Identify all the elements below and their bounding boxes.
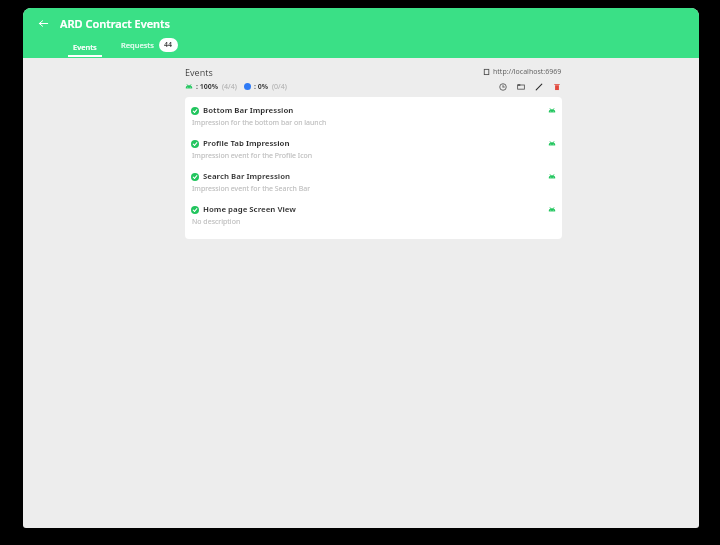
staticText: Home page Screen View: [203, 204, 296, 215]
staticText: Events: [185, 66, 213, 78]
staticText: Bottom Bar Impression: [203, 105, 294, 116]
staticText: (0/4): [272, 82, 287, 92]
button[interactable]: Search Bar Impression: [185, 168, 562, 201]
staticText: No description: [192, 217, 241, 227]
button[interactable]: Events: [67, 39, 103, 57]
button[interactable]: History: [497, 81, 508, 92]
staticText: Impression event for the Search Bar: [192, 184, 311, 194]
button[interactable]: Edit: [533, 81, 544, 92]
staticText: Profile Tab Impression: [203, 138, 290, 149]
staticText: 44: [164, 40, 173, 50]
staticText: Events: [73, 42, 97, 52]
staticText: : 0%: [254, 82, 269, 92]
button[interactable]: Delete: [551, 81, 562, 92]
staticText: http://localhost:6969: [493, 67, 562, 77]
staticText: ARD Contract Events: [60, 16, 170, 31]
button[interactable]: Profile Tab Impression: [185, 135, 562, 168]
staticText: : 100%: [196, 82, 219, 92]
staticText: (4/4): [222, 82, 237, 92]
staticText: Requests: [121, 40, 154, 50]
button[interactable]: Bottom Bar Impression: [185, 102, 562, 135]
button[interactable]: http://localhost:6969: [483, 67, 562, 77]
staticText: Impression for the bottom bar on launch: [192, 118, 327, 128]
button[interactable]: Home page Screen View: [185, 201, 562, 234]
button[interactable]: Requests: [121, 38, 178, 57]
staticText: Search Bar Impression: [203, 171, 291, 182]
button[interactable]: Back: [31, 11, 55, 35]
staticText: Impression event for the Profile Icon: [192, 151, 313, 161]
button[interactable]: Folder: [515, 81, 526, 92]
